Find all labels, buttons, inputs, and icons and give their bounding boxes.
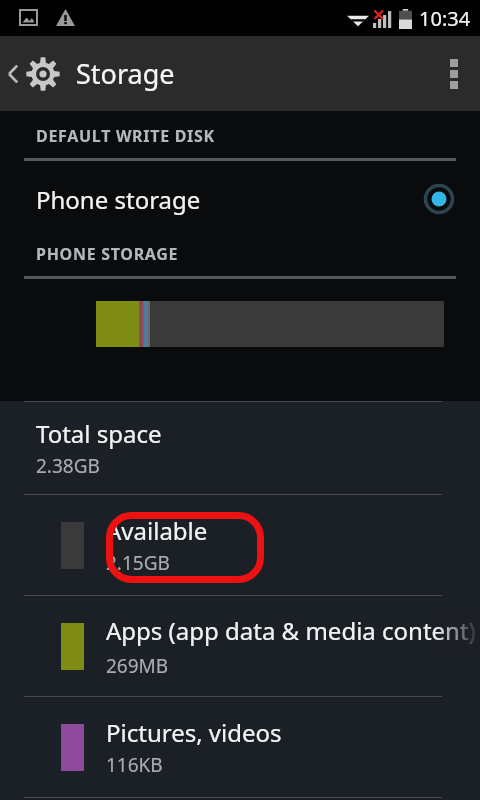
button[interactable]: Navigate up (0, 36, 187, 111)
button[interactable]: Total space (0, 402, 480, 494)
staticText: Apps (app data & media content) (106, 614, 476, 647)
button[interactable]: More options (428, 36, 480, 111)
staticText: Storage (76, 55, 175, 92)
staticText: 269MB (106, 653, 169, 679)
staticText: Available (106, 514, 208, 547)
staticText: Phone storage (36, 183, 424, 216)
staticText: Pictures, videos (106, 716, 282, 749)
button[interactable]: Apps (app data & media content) (0, 596, 480, 696)
staticText: 2.15GB (106, 550, 170, 576)
staticText: 10:34 (419, 5, 471, 32)
button[interactable]: Available (0, 495, 480, 595)
button[interactable]: Pictures, videos (0, 697, 480, 797)
button[interactable]: Phone storage (0, 161, 480, 237)
staticText: DEFAULT WRITE DISK (36, 125, 215, 147)
staticText: PHONE STORAGE (36, 243, 179, 265)
staticText: 116KB (106, 752, 163, 778)
staticText: Total space (36, 417, 162, 450)
staticText: 2.38GB (36, 453, 100, 479)
